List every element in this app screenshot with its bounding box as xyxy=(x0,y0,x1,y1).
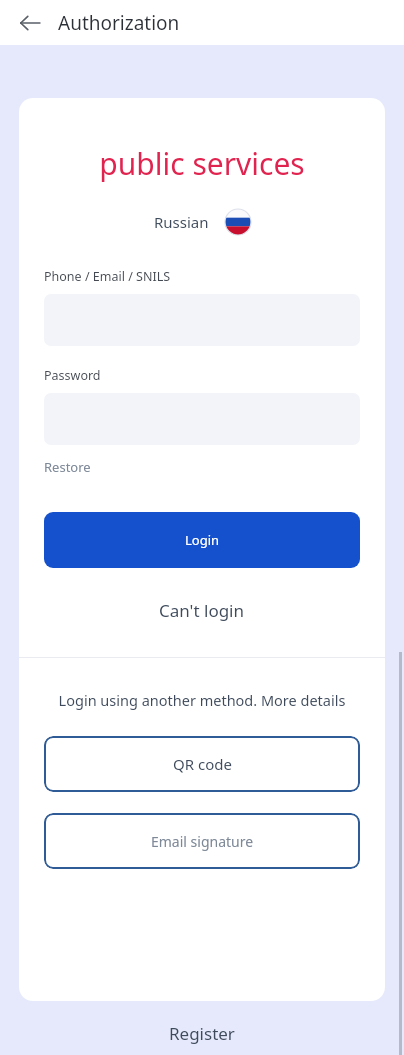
button[interactable]: Email signature xyxy=(44,813,360,869)
button[interactable]: Back xyxy=(10,3,50,43)
staticText: Can't login xyxy=(159,599,245,622)
staticText: QR code xyxy=(173,754,232,774)
staticText: Restore xyxy=(44,458,91,476)
staticText: Phone / Email / SNILS xyxy=(44,268,171,285)
staticText: Russian xyxy=(154,212,209,232)
staticText: Login xyxy=(185,531,220,549)
staticText: Email signature xyxy=(151,832,254,851)
button[interactable]: Can't login xyxy=(44,599,360,622)
button[interactable]: Register xyxy=(0,1022,404,1045)
button[interactable]: Login using another method. More details xyxy=(44,690,360,710)
staticText: Password xyxy=(44,367,101,384)
staticText: public services xyxy=(19,143,385,184)
staticText: Register xyxy=(169,1022,235,1045)
button[interactable]: QR code xyxy=(44,736,360,792)
staticText: Authorization xyxy=(58,10,180,36)
button[interactable]: Restore xyxy=(44,458,91,476)
button[interactable]: Login xyxy=(44,512,360,568)
button[interactable]: Russian xyxy=(19,209,385,235)
